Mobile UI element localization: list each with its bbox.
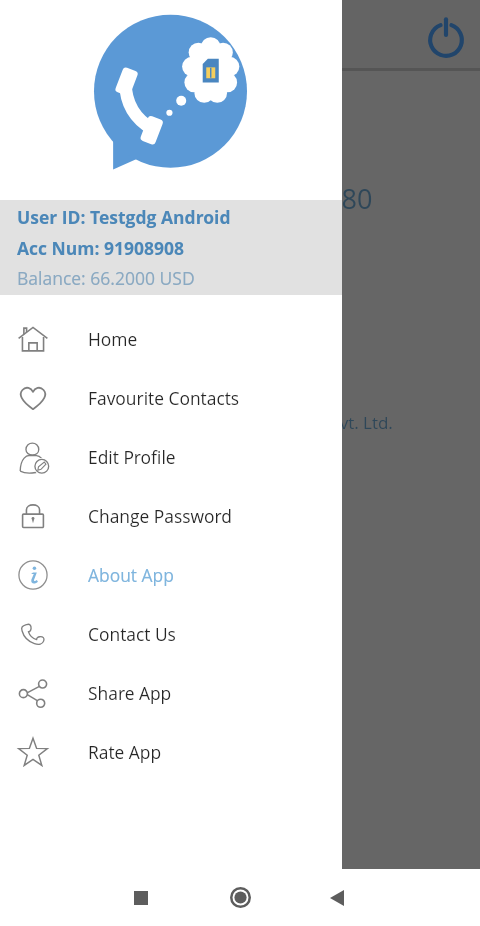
- staticText: Rate App: [88, 740, 162, 764]
- button[interactable]: Logout: [424, 13, 468, 57]
- staticText: Techno Pvt. Ltd.: [268, 411, 393, 434]
- button[interactable]: Share App: [0, 663, 342, 722]
- button[interactable]: Recent apps: [100, 869, 181, 926]
- staticText: Balance: 66.2000 USD: [17, 266, 195, 290]
- button[interactable]: Favourite Contacts: [0, 368, 342, 427]
- button[interactable]: Rate App: [0, 722, 342, 781]
- staticText: Favourite Contacts: [88, 386, 240, 410]
- button[interactable]: Home: [200, 869, 281, 926]
- button[interactable]: Edit Profile: [0, 427, 342, 486]
- staticText: Share App: [88, 681, 172, 705]
- staticText: About App: [88, 563, 174, 587]
- button[interactable]: About App: [0, 545, 342, 604]
- button[interactable]: Back: [296, 869, 377, 926]
- staticText: Edit Profile: [88, 445, 176, 469]
- staticText: Home: [88, 327, 138, 351]
- staticText: Contact Us: [88, 622, 176, 646]
- staticText: Welcome 91908980: [126, 180, 373, 217]
- button[interactable]: Contact Us: [0, 604, 342, 663]
- staticText: Acc Num: 91908908: [17, 236, 184, 260]
- button[interactable]: Home: [0, 309, 342, 368]
- staticText: User ID: Testgdg Android: [17, 205, 231, 229]
- button[interactable]: Change Password: [0, 486, 342, 545]
- staticText: Change Password: [88, 504, 232, 528]
